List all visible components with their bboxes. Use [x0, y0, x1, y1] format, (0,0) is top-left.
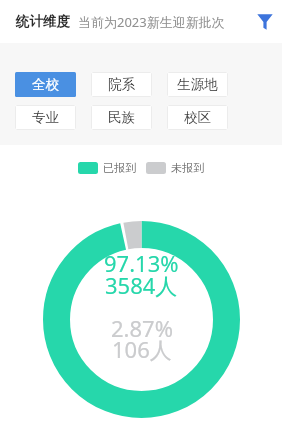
staticText: 未报到: [171, 161, 204, 175]
staticText: 统计维度: [16, 13, 70, 30]
button[interactable]: 校区: [167, 105, 228, 130]
staticText: 已报到: [103, 161, 136, 175]
button[interactable]: 生源地: [167, 72, 228, 97]
staticText: 106人: [112, 334, 172, 364]
button[interactable]: Registration donut chart: [43, 221, 240, 418]
button[interactable]: Filter: [253, 10, 277, 34]
button[interactable]: 民族: [91, 105, 152, 130]
button[interactable]: 院系: [91, 72, 152, 97]
staticText: 全校: [32, 76, 59, 93]
button[interactable]: 专业: [15, 105, 76, 130]
button[interactable]: 全校: [15, 72, 76, 97]
staticText: 2.87%: [111, 313, 173, 343]
staticText: 民族: [108, 109, 135, 126]
staticText: 97.13%: [104, 248, 179, 278]
staticText: 校区: [184, 109, 211, 126]
staticText: 生源地: [177, 76, 218, 93]
staticText: 专业: [32, 109, 59, 126]
staticText: 院系: [108, 76, 135, 93]
staticText: 当前为2023新生迎新批次: [78, 13, 225, 31]
staticText: 3584人: [105, 270, 178, 300]
